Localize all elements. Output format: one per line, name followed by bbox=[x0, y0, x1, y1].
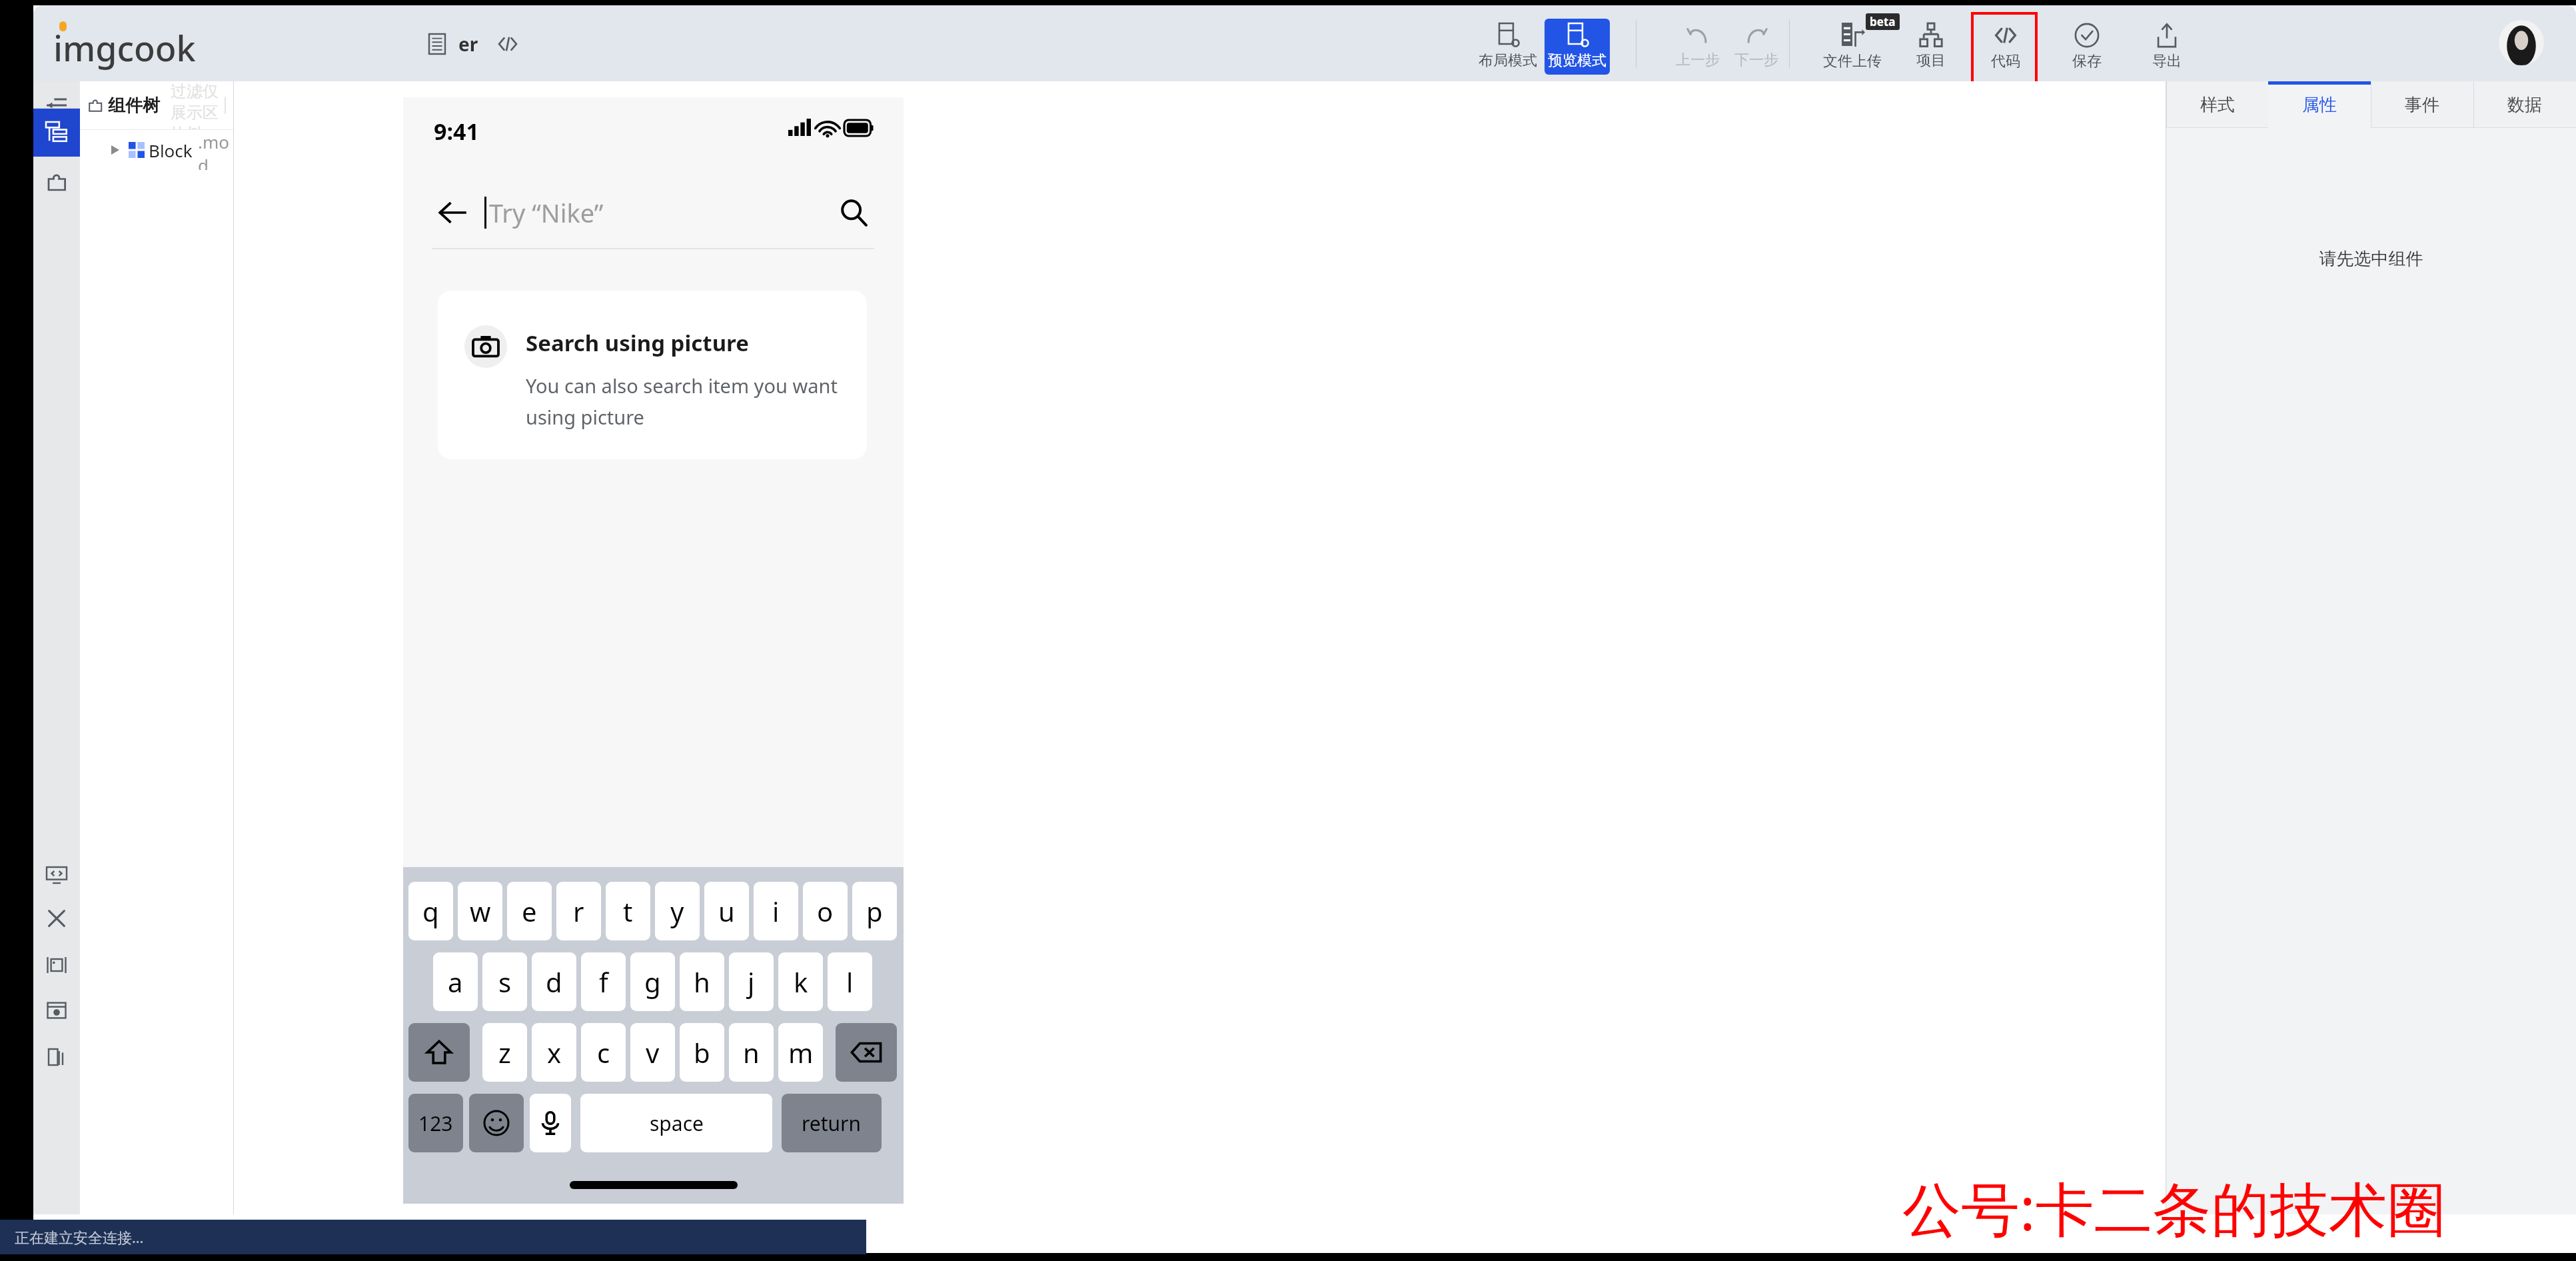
button[interactable]: z bbox=[482, 1023, 527, 1082]
staticText: Search using picture bbox=[526, 328, 749, 358]
staticText: q bbox=[422, 893, 439, 929]
button[interactable]: 属性 bbox=[2268, 81, 2371, 128]
button[interactable]: Shift bbox=[408, 1023, 470, 1082]
button[interactable]: Voice input bbox=[530, 1094, 571, 1152]
staticText: a bbox=[448, 964, 463, 1000]
staticText: 预览模式 bbox=[1548, 51, 1607, 70]
button[interactable]: a bbox=[433, 952, 478, 1011]
button[interactable]: Backspace bbox=[836, 1023, 897, 1082]
button[interactable]: 预览模式 bbox=[1545, 19, 1610, 75]
button[interactable]: Emoji bbox=[469, 1094, 524, 1152]
staticText: h bbox=[694, 964, 710, 1000]
button[interactable]: Search using picture bbox=[438, 291, 867, 459]
button[interactable]: Back bbox=[434, 193, 472, 232]
button[interactable]: Document bbox=[422, 29, 452, 59]
staticText: i bbox=[772, 893, 780, 929]
button[interactable]: 代码 bbox=[1972, 19, 2039, 75]
button[interactable]: Panel bbox=[33, 894, 80, 942]
staticText: 公号:卡二条的技术圈 bbox=[1902, 1168, 2446, 1248]
staticText: p bbox=[866, 893, 883, 929]
staticText: Try “Nike” bbox=[489, 195, 604, 230]
button[interactable]: 事件 bbox=[2371, 81, 2473, 128]
button[interactable]: k bbox=[778, 952, 823, 1011]
staticText: v bbox=[646, 1034, 660, 1070]
button[interactable]: Panel bbox=[33, 1033, 80, 1081]
staticText: 数据 bbox=[2507, 94, 2542, 116]
button[interactable]: Panel bbox=[33, 851, 80, 899]
button[interactable]: r bbox=[556, 882, 601, 940]
staticText: beta bbox=[1870, 14, 1896, 29]
staticText: j bbox=[748, 964, 755, 1000]
staticText: .mod bbox=[198, 130, 233, 170]
button[interactable]: c bbox=[581, 1023, 626, 1082]
staticText: You can also search item you want using … bbox=[526, 373, 839, 430]
staticText: b bbox=[694, 1034, 710, 1070]
button[interactable]: p bbox=[852, 882, 897, 940]
staticText: 项目 bbox=[1916, 51, 1946, 70]
button[interactable]: Panel bbox=[33, 941, 80, 989]
button[interactable]: 布局模式 bbox=[1475, 19, 1541, 75]
button[interactable]: Account bbox=[2499, 20, 2544, 65]
button[interactable]: b bbox=[680, 1023, 724, 1082]
button[interactable]: 样式 bbox=[2166, 81, 2268, 128]
staticText: x bbox=[547, 1034, 562, 1070]
button[interactable]: Code view bbox=[493, 29, 522, 59]
button[interactable]: d bbox=[532, 952, 576, 1011]
staticText: z bbox=[498, 1034, 511, 1070]
button[interactable]: h bbox=[680, 952, 724, 1011]
button[interactable]: j bbox=[729, 952, 774, 1011]
button[interactable]: w bbox=[458, 882, 502, 940]
button[interactable]: y bbox=[655, 882, 700, 940]
staticText: 导出 bbox=[2152, 52, 2182, 71]
staticText: 9:41 bbox=[434, 116, 479, 147]
button[interactable]: o bbox=[803, 882, 848, 940]
button[interactable]: x bbox=[532, 1023, 576, 1082]
button[interactable]: Panel bbox=[33, 81, 80, 129]
staticText: return bbox=[802, 1110, 862, 1137]
button[interactable]: return bbox=[782, 1094, 882, 1152]
staticText: 事件 bbox=[2405, 94, 2439, 116]
button[interactable]: v bbox=[630, 1023, 675, 1082]
button[interactable]: Block bbox=[80, 130, 233, 170]
staticText: m bbox=[788, 1034, 814, 1070]
button[interactable]: Panel bbox=[33, 109, 80, 157]
staticText: 上一步 bbox=[1676, 51, 1720, 69]
staticText: 组件树 bbox=[108, 95, 160, 117]
button[interactable]: er bbox=[458, 31, 478, 57]
button[interactable]: u bbox=[704, 882, 749, 940]
button[interactable]: n bbox=[729, 1023, 774, 1082]
staticText: e bbox=[522, 893, 537, 929]
button[interactable]: 导出 bbox=[2134, 19, 2200, 75]
button[interactable]: g bbox=[630, 952, 675, 1011]
button[interactable]: t bbox=[606, 882, 650, 940]
button[interactable]: space bbox=[580, 1094, 772, 1152]
staticText: 123 bbox=[418, 1110, 453, 1137]
button[interactable]: q bbox=[408, 882, 453, 940]
button[interactable]: e bbox=[507, 882, 552, 940]
button[interactable]: Panel bbox=[33, 158, 80, 206]
staticText: y bbox=[670, 893, 684, 929]
button[interactable]: i bbox=[754, 882, 798, 940]
button[interactable]: 文件上传 bbox=[1819, 19, 1886, 75]
staticText: 保存 bbox=[2072, 52, 2102, 71]
button[interactable]: 123 bbox=[408, 1094, 463, 1152]
staticText: o bbox=[817, 893, 834, 929]
button[interactable]: Panel bbox=[33, 986, 80, 1034]
button[interactable]: Search bbox=[834, 193, 873, 232]
staticText: 代码 bbox=[1991, 52, 2020, 71]
staticText: w bbox=[470, 893, 491, 929]
staticText: space bbox=[650, 1110, 704, 1137]
staticText: d bbox=[546, 964, 562, 1000]
staticText: g bbox=[644, 964, 661, 1000]
staticText: l bbox=[846, 964, 854, 1000]
button[interactable]: f bbox=[581, 952, 626, 1011]
button[interactable]: s bbox=[482, 952, 527, 1011]
staticText: 下一步 bbox=[1734, 51, 1778, 69]
staticText: n bbox=[743, 1034, 760, 1070]
button[interactable]: m bbox=[778, 1023, 823, 1082]
button[interactable]: 保存 bbox=[2054, 19, 2120, 75]
button[interactable]: 项目 bbox=[1898, 19, 1964, 75]
button[interactable]: 数据 bbox=[2473, 81, 2576, 128]
button[interactable]: l bbox=[828, 952, 872, 1011]
staticText: 属性 bbox=[2302, 94, 2337, 116]
